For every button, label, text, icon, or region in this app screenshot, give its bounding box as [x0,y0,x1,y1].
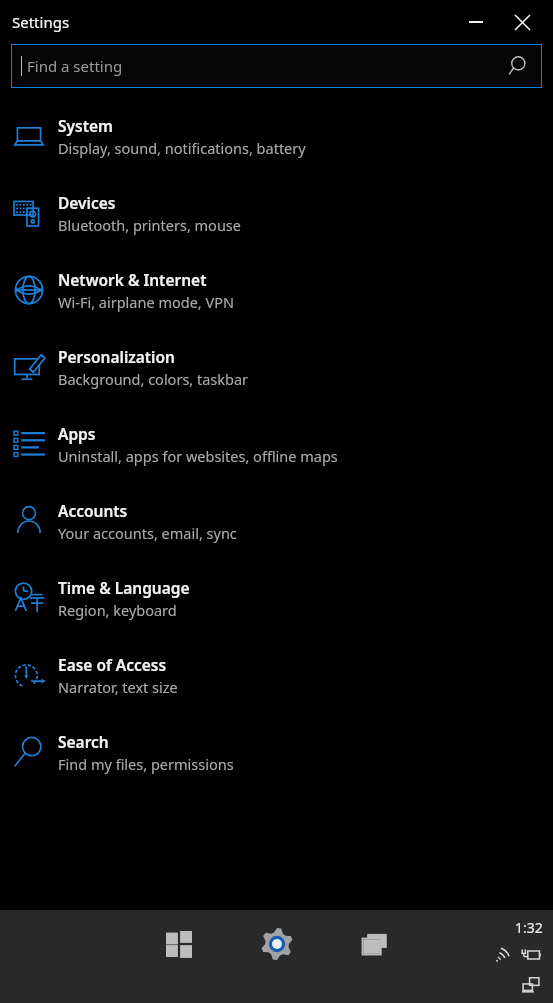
button[interactable]: Project [519,973,543,997]
button[interactable]: Apps [0,418,553,470]
staticText: Background, colors, taskbar [58,369,249,389]
staticText: Search [58,731,109,752]
staticText: Devices [58,192,116,213]
button[interactable]: Network & Internet [0,264,553,316]
button[interactable]: Ease of Access [0,649,553,701]
button[interactable]: Search [0,726,553,778]
staticText: Narrator, text size [58,677,178,697]
button[interactable]: Accounts [0,495,553,547]
staticText: Your accounts, email, sync [58,523,237,543]
staticText: Display, sound, notifications, battery [58,138,306,158]
button[interactable]: Minimize [453,2,499,42]
button[interactable]: Task View [344,916,406,972]
staticText: Region, keyboard [58,600,177,620]
staticText: Bluetooth, printers, mouse [58,215,241,235]
staticText: Settings [12,12,70,32]
button[interactable]: Personalization [0,341,553,393]
button[interactable]: Find a setting [11,44,542,88]
button[interactable]: Close [499,2,545,42]
staticText: Wi-Fi, airplane mode, VPN [58,292,234,312]
button[interactable]: Devices [0,187,553,239]
staticText: Network & Internet [58,269,207,290]
staticText: Find my files, permissions [58,754,234,774]
button[interactable]: Network [492,944,514,966]
staticText: Apps [58,423,96,444]
staticText: System [58,115,113,136]
staticText: Time & Language [58,577,190,598]
button[interactable]: System [0,110,553,162]
button[interactable]: Battery [519,943,543,967]
staticText: Ease of Access [58,654,167,675]
button[interactable]: Time & Language [0,572,553,624]
button[interactable]: Start [148,916,210,972]
staticText: Find a setting [27,56,123,76]
staticText: Uninstall, apps for websites, offline ma… [58,446,338,466]
staticText: Accounts [58,500,128,521]
staticText: 1:32 [515,918,543,937]
button[interactable]: Settings [246,916,308,972]
staticText: Personalization [58,346,175,367]
